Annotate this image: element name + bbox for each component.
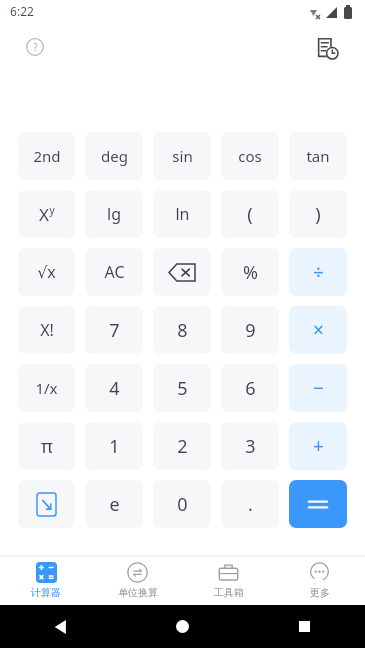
button[interactable]: %: [221, 248, 279, 296]
staticText: 8: [177, 318, 188, 343]
staticText: ): [315, 202, 321, 227]
staticText: e: [109, 492, 120, 517]
staticText: X!: [40, 319, 54, 341]
button[interactable]: ×: [289, 306, 347, 354]
staticText: X: [39, 203, 49, 226]
staticText: 5: [177, 376, 188, 401]
button[interactable]: 5: [153, 364, 211, 412]
staticText: 2: [177, 434, 188, 459]
staticText: 工具箱: [214, 586, 244, 599]
button[interactable]: 7: [85, 306, 143, 354]
button[interactable]: 6: [221, 364, 279, 412]
button[interactable]: ln: [153, 190, 211, 238]
button[interactable]: −: [289, 364, 347, 412]
staticText: ÷: [313, 259, 324, 285]
staticText: −: [313, 375, 324, 401]
button[interactable]: 4: [85, 364, 143, 412]
staticText: +: [313, 433, 324, 459]
staticText: 6:22: [10, 3, 34, 19]
button[interactable]: History: [308, 29, 346, 67]
staticText: (: [247, 202, 253, 227]
staticText: 1: [109, 434, 120, 459]
button[interactable]: [289, 480, 347, 528]
staticText: tan: [306, 146, 330, 166]
button[interactable]: π: [18, 422, 75, 470]
button[interactable]: e: [85, 480, 143, 528]
staticText: 3: [245, 434, 256, 459]
button[interactable]: 更多: [274, 556, 365, 605]
button[interactable]: 1/x: [18, 364, 75, 412]
button[interactable]: 0: [153, 480, 211, 528]
button[interactable]: .: [221, 480, 279, 528]
button[interactable]: (: [221, 190, 279, 238]
button[interactable]: tan: [289, 132, 347, 180]
staticText: 计算器: [31, 586, 61, 599]
staticText: π: [41, 434, 53, 459]
staticText: 9: [245, 318, 256, 343]
button[interactable]: AC: [85, 248, 143, 296]
staticText: 2nd: [33, 146, 61, 166]
button[interactable]: Collapse keypad: [18, 480, 75, 528]
staticText: 更多: [310, 586, 330, 599]
button[interactable]: deg: [85, 132, 143, 180]
staticText: 单位换算: [118, 586, 158, 599]
button[interactable]: lg: [85, 190, 143, 238]
staticText: y: [49, 203, 55, 217]
staticText: 6: [245, 376, 256, 401]
button[interactable]: Help: [20, 32, 50, 62]
staticText: 7: [109, 318, 120, 343]
staticText: 1/x: [35, 378, 58, 398]
staticText: 4: [109, 376, 120, 401]
staticText: lg: [107, 203, 121, 225]
staticText: ×: [313, 317, 324, 343]
staticText: deg: [101, 146, 128, 166]
staticText: √x: [37, 261, 56, 283]
button[interactable]: √x: [18, 248, 75, 296]
button[interactable]: 1: [85, 422, 143, 470]
button[interactable]: 3: [221, 422, 279, 470]
button[interactable]: 计算器: [0, 556, 92, 605]
button[interactable]: cos: [221, 132, 279, 180]
button[interactable]: 2: [153, 422, 211, 470]
button[interactable]: Backspace: [153, 248, 211, 296]
button[interactable]: X!: [18, 306, 75, 354]
button[interactable]: 2nd: [18, 132, 75, 180]
button[interactable]: sin: [153, 132, 211, 180]
button[interactable]: 9: [221, 306, 279, 354]
staticText: cos: [238, 146, 262, 166]
staticText: AC: [104, 261, 125, 283]
button[interactable]: 单位换算: [92, 556, 183, 605]
staticText: ?: [33, 40, 38, 54]
button[interactable]: Recents: [243, 605, 365, 648]
button[interactable]: 工具箱: [183, 556, 274, 605]
button[interactable]: Back: [0, 605, 121, 648]
button[interactable]: X: [18, 190, 75, 238]
staticText: %: [243, 260, 258, 285]
staticText: sin: [172, 146, 193, 166]
staticText: 0: [177, 492, 188, 517]
button[interactable]: Home: [121, 605, 243, 648]
button[interactable]: +: [289, 422, 347, 470]
button[interactable]: ): [289, 190, 347, 238]
button[interactable]: ÷: [289, 248, 347, 296]
staticText: .: [248, 492, 253, 517]
staticText: ln: [175, 203, 190, 225]
button[interactable]: 8: [153, 306, 211, 354]
